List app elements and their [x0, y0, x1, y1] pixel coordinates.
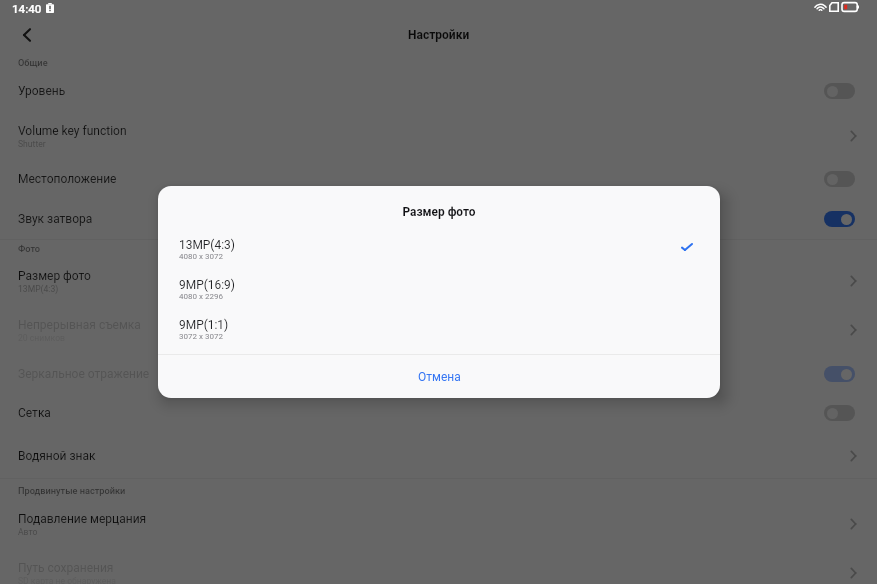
button[interactable]: Непрерывная съемка — [0, 306, 877, 354]
staticText: 9MP(16:9) — [179, 278, 235, 292]
button[interactable]: 9MP(16:9) — [158, 269, 720, 309]
staticText: Размер фото — [18, 269, 91, 283]
button[interactable]: Toggle — [824, 171, 855, 187]
button[interactable]: 9MP(1:1) — [158, 309, 720, 349]
button[interactable]: 13MP(4:3) — [158, 229, 720, 269]
button[interactable]: Toggle — [824, 405, 855, 421]
staticText: 4080 x 3072 — [179, 252, 223, 261]
other: Open — [844, 273, 860, 289]
staticText: Путь сохранения — [18, 561, 114, 575]
staticText: 13MP(4:3) — [179, 238, 235, 252]
staticText: Звук затвора — [18, 212, 829, 226]
staticText: Общие — [18, 57, 48, 68]
button[interactable]: Toggle — [824, 83, 855, 99]
button[interactable]: Volume key function — [0, 112, 877, 160]
staticText: Фото — [18, 243, 41, 254]
button[interactable]: Звук затвора — [0, 200, 877, 238]
staticText: 14:40 — [12, 2, 42, 16]
button[interactable]: Местоположение — [0, 160, 877, 198]
staticText: Непрерывная съемка — [18, 318, 141, 332]
button[interactable]: Toggle — [824, 211, 855, 227]
staticText: 3072 x 3072 — [179, 332, 223, 341]
button[interactable]: Размер фото — [0, 256, 877, 306]
other: Open — [844, 448, 860, 464]
button[interactable]: Сетка — [0, 393, 877, 432]
other: Open — [844, 322, 860, 338]
button[interactable]: Отмена — [158, 355, 720, 398]
staticText: Авто — [18, 527, 38, 537]
staticText: Shutter — [18, 139, 46, 149]
button[interactable]: Toggle — [824, 366, 855, 382]
staticText: Отмена — [418, 370, 461, 384]
other: Selected — [679, 239, 695, 255]
button[interactable]: Подавление мерцания — [0, 500, 877, 548]
staticText: Уровень — [18, 84, 829, 98]
staticText: Зеркальное отражение — [18, 367, 829, 381]
staticText: Водяной знак — [18, 449, 844, 463]
button[interactable]: Back — [12, 21, 40, 49]
staticText: Подавление мерцания — [18, 512, 147, 526]
staticText: Настройки — [408, 28, 470, 42]
staticText: Размер фото — [402, 205, 476, 219]
button[interactable]: Уровень — [0, 72, 877, 110]
other: Open — [844, 516, 860, 532]
other: Open — [844, 128, 860, 144]
staticText: Продвинутые настройки — [18, 485, 126, 496]
staticText: 13MP(4:3) — [18, 284, 59, 294]
button[interactable]: Водяной знак — [0, 434, 877, 477]
staticText: Volume key function — [18, 124, 127, 138]
staticText: 4080 x 2296 — [179, 292, 223, 301]
other: Open — [844, 565, 860, 581]
button[interactable]: Зеркальное отражение — [0, 354, 877, 394]
staticText: Местоположение — [18, 172, 829, 186]
staticText: Сетка — [18, 406, 829, 420]
staticText: 9MP(1:1) — [179, 318, 229, 332]
